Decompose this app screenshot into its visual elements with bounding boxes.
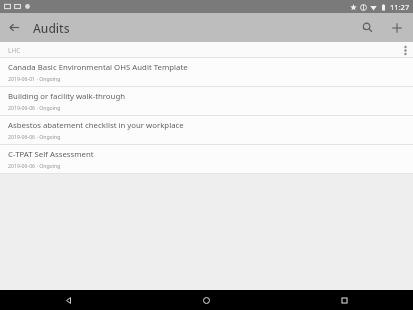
button[interactable]: Add (382, 13, 411, 42)
staticText: LHC (8, 46, 21, 55)
button[interactable]: C-TPAT Self Assessment (0, 145, 413, 174)
staticText: 2019-06-06 · Ongoing (8, 162, 61, 169)
staticText: Canada Basic Environmental OHS Audit Tem… (8, 62, 188, 73)
button[interactable]: Back (0, 13, 29, 42)
button[interactable]: More options (397, 42, 413, 58)
button[interactable]: Back (0, 290, 137, 310)
button[interactable]: Canada Basic Environmental OHS Audit Tem… (0, 58, 413, 87)
staticText: 2019-06-01 · Ongoing (8, 75, 61, 82)
button[interactable]: Search (353, 13, 382, 42)
staticText: Audits (33, 20, 70, 36)
button[interactable]: Recent apps (275, 290, 413, 310)
staticText: 2019-06-06 · Ongoing (8, 104, 61, 111)
staticText: 2019-06-06 · Ongoing (8, 133, 61, 140)
staticText: C-TPAT Self Assessment (8, 149, 94, 160)
staticText: 11:27 (390, 2, 410, 12)
staticText: Building or facility walk-through (8, 91, 126, 102)
button[interactable]: Asbestos abatement checklist in your wor… (0, 116, 413, 145)
button[interactable]: Building or facility walk-through (0, 87, 413, 116)
button[interactable]: Home (137, 290, 275, 310)
staticText: Asbestos abatement checklist in your wor… (8, 120, 184, 131)
